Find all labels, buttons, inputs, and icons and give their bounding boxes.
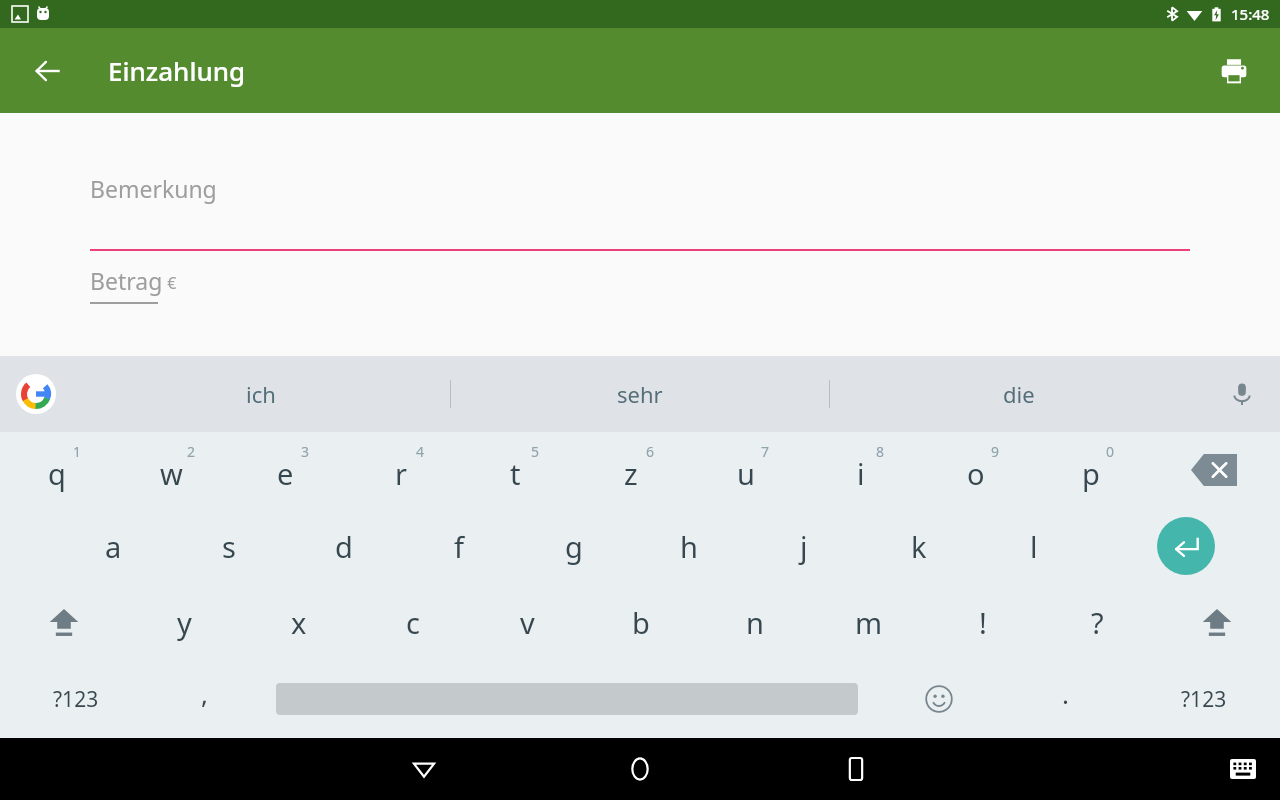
button[interactable]: . bbox=[1002, 660, 1128, 738]
staticText: l bbox=[1030, 527, 1038, 566]
staticText: s bbox=[222, 527, 236, 566]
button[interactable]: f bbox=[401, 508, 516, 584]
button[interactable]: Keyboard bbox=[1218, 744, 1268, 794]
staticText: t bbox=[510, 454, 521, 493]
button[interactable]: Home bbox=[612, 741, 668, 797]
button[interactable]: h bbox=[631, 508, 746, 584]
staticText: 5 bbox=[531, 442, 540, 461]
staticText: d bbox=[335, 527, 353, 566]
button[interactable]: q bbox=[0, 432, 114, 508]
staticText: k bbox=[911, 527, 927, 566]
staticText: n bbox=[746, 603, 764, 642]
staticText: f bbox=[454, 527, 464, 566]
button[interactable]: Back bbox=[20, 43, 76, 99]
button[interactable]: m bbox=[812, 584, 926, 660]
button[interactable]: w bbox=[114, 432, 228, 508]
button[interactable]: die bbox=[830, 356, 1208, 432]
staticText: x bbox=[291, 603, 307, 642]
button[interactable]: ?123 bbox=[0, 660, 152, 738]
staticText: g bbox=[565, 527, 583, 566]
button[interactable]: k bbox=[861, 508, 976, 584]
staticText: b bbox=[632, 603, 650, 642]
staticText: ich bbox=[246, 379, 276, 409]
staticText: h bbox=[680, 527, 698, 566]
button[interactable]: Back bbox=[396, 741, 452, 797]
button[interactable]: j bbox=[746, 508, 861, 584]
button[interactable]: ! bbox=[926, 584, 1040, 660]
staticText: 4 bbox=[416, 442, 425, 461]
button[interactable]: x bbox=[242, 584, 356, 660]
button[interactable]: Enter bbox=[1091, 508, 1280, 584]
staticText: y bbox=[177, 603, 192, 642]
staticText: 9 bbox=[991, 442, 1000, 461]
staticText: Betrag bbox=[90, 265, 163, 296]
button[interactable]: Google bbox=[14, 372, 58, 416]
button[interactable]: i bbox=[803, 432, 918, 508]
button[interactable]: ?123 bbox=[1128, 660, 1280, 738]
button[interactable]: v bbox=[470, 584, 584, 660]
staticText: Einzahlung bbox=[108, 53, 246, 88]
button[interactable]: a bbox=[56, 508, 171, 584]
staticText: 15:48 bbox=[1231, 4, 1270, 24]
staticText: ? bbox=[1091, 603, 1104, 642]
staticText: w bbox=[160, 454, 183, 493]
staticText: z bbox=[624, 454, 638, 493]
button[interactable]: Voice input bbox=[1220, 372, 1264, 416]
staticText: 6 bbox=[646, 442, 655, 461]
staticText: Bemerkung bbox=[90, 173, 217, 204]
button[interactable]: g bbox=[516, 508, 631, 584]
staticText: 3 bbox=[301, 442, 310, 461]
staticText: e bbox=[277, 454, 294, 493]
staticText: 8 bbox=[876, 442, 885, 461]
button[interactable]: sehr bbox=[451, 356, 829, 432]
button[interactable]: o bbox=[918, 432, 1033, 508]
button[interactable]: e bbox=[228, 432, 343, 508]
button[interactable]: ich bbox=[72, 356, 450, 432]
button[interactable]: p bbox=[1033, 432, 1148, 508]
button[interactable]: Space bbox=[257, 660, 876, 738]
staticText: die bbox=[1003, 379, 1035, 409]
staticText: 7 bbox=[761, 442, 770, 461]
staticText: o bbox=[967, 454, 985, 493]
button[interactable]: Backspace bbox=[1148, 432, 1280, 508]
staticText: ! bbox=[979, 603, 987, 642]
button[interactable]: Shift bbox=[1154, 584, 1280, 660]
staticText: sehr bbox=[617, 379, 663, 409]
button[interactable]: Emoji bbox=[876, 660, 1002, 738]
button[interactable]: u bbox=[688, 432, 803, 508]
staticText: p bbox=[1082, 454, 1100, 493]
staticText: 0 bbox=[1106, 442, 1115, 461]
button[interactable]: s bbox=[171, 508, 286, 584]
staticText: q bbox=[48, 454, 66, 493]
button[interactable]: t bbox=[458, 432, 573, 508]
button[interactable]: Bemerkung bbox=[90, 173, 1190, 251]
staticText: a bbox=[105, 527, 122, 566]
button[interactable]: z bbox=[573, 432, 688, 508]
button[interactable]: Recents bbox=[828, 741, 884, 797]
button[interactable]: d bbox=[286, 508, 401, 584]
staticText: m bbox=[855, 603, 883, 642]
button[interactable]: Print bbox=[1206, 43, 1262, 99]
staticText: j bbox=[800, 527, 808, 566]
button[interactable]: n bbox=[698, 584, 812, 660]
staticText: , bbox=[201, 676, 208, 711]
button[interactable]: l bbox=[976, 508, 1091, 584]
staticText: r bbox=[395, 454, 407, 493]
staticText: ?123 bbox=[53, 685, 99, 714]
button[interactable]: Betrag bbox=[90, 265, 177, 304]
button[interactable]: Shift bbox=[0, 584, 127, 660]
button[interactable]: , bbox=[152, 660, 257, 738]
staticText: € bbox=[163, 272, 177, 294]
staticText: ?123 bbox=[1181, 685, 1227, 714]
button[interactable]: c bbox=[356, 584, 470, 660]
staticText: u bbox=[737, 454, 755, 493]
staticText: i bbox=[857, 454, 865, 493]
button[interactable]: b bbox=[584, 584, 698, 660]
staticText: v bbox=[520, 603, 535, 642]
staticText: 2 bbox=[187, 442, 196, 461]
button[interactable]: ? bbox=[1040, 584, 1154, 660]
staticText: . bbox=[1062, 676, 1069, 711]
button[interactable]: y bbox=[127, 584, 242, 660]
staticText: c bbox=[406, 603, 420, 642]
button[interactable]: r bbox=[343, 432, 458, 508]
